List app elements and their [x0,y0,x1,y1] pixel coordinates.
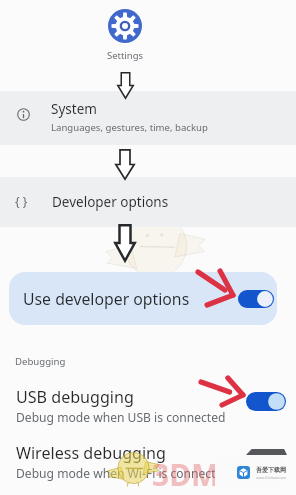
staticText: { } [15,193,28,209]
button[interactable]: Toggle switch, on [246,392,286,411]
other: Annotation arrow [201,378,243,405]
staticText: Languages, gestures, time, backup [51,121,208,134]
button[interactable]: { } [0,177,296,227]
staticText: Use developer options [23,288,190,310]
staticText: Debug mode when USB is connected [16,409,226,425]
other: Annotation arrow [198,271,233,305]
button[interactable]: Wireless debugging [0,436,296,486]
button[interactable]: Toggle switch, on [238,290,274,308]
button[interactable]: USB debugging [0,380,296,430]
staticText: Debugging [15,355,66,368]
staticText: Wireless debugging [16,442,166,464]
staticText: Developer options [52,193,169,211]
staticText: Settings [99,49,151,62]
staticText: USB debugging [16,386,134,408]
staticText: Debug mode when Wi-Fi is connected [16,465,230,481]
button[interactable]: Use developer options [9,272,277,325]
button[interactable]: System [0,91,296,145]
staticText: 3DM [152,454,220,495]
button[interactable]: Settings app [108,9,142,43]
staticText: 吾爱下载网 [256,466,286,474]
staticText: www.52xiazai.com [256,475,287,480]
staticText: System [51,100,97,118]
